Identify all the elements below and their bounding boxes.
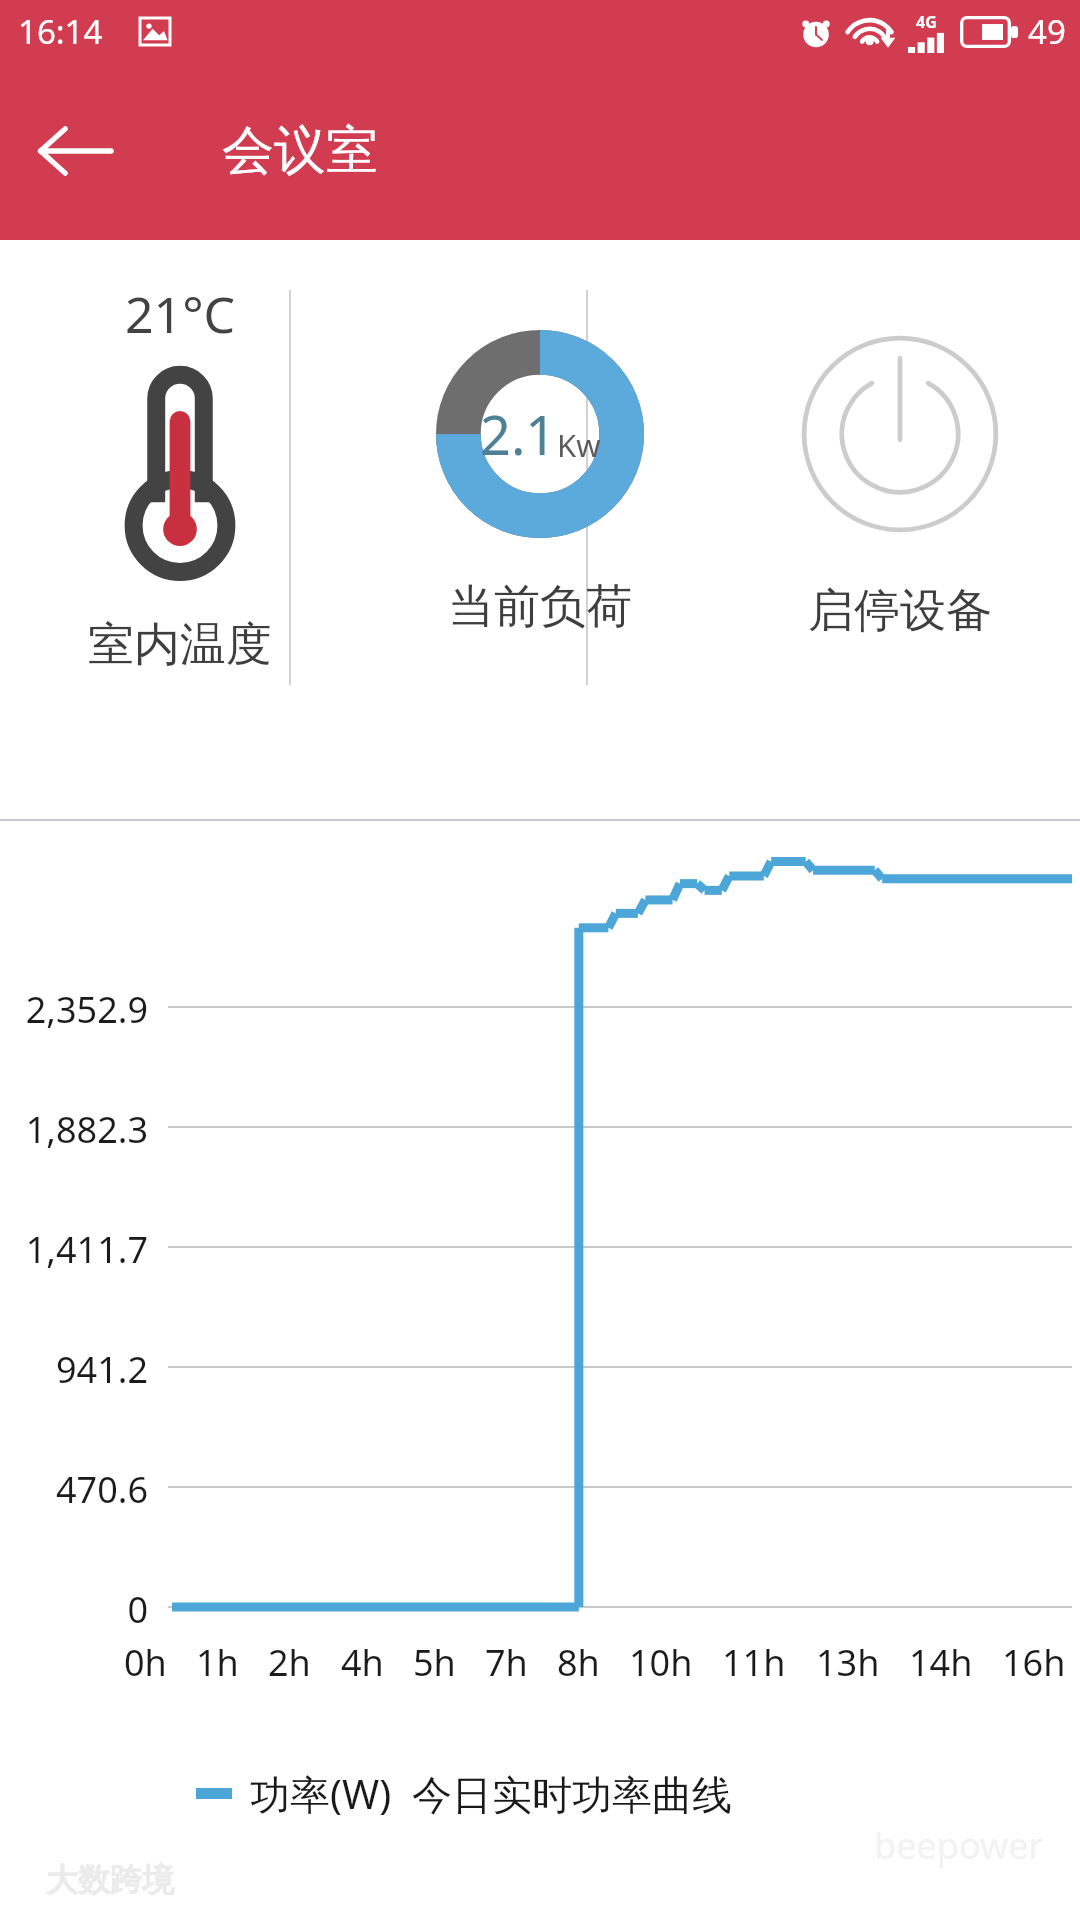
staticText: 1h	[196, 1638, 239, 1687]
staticText: 8h	[557, 1638, 600, 1687]
staticText: 2,352.9	[0, 985, 148, 1034]
staticText: 13h	[816, 1638, 880, 1687]
staticText: 470.6	[0, 1465, 148, 1514]
staticText: 7h	[485, 1638, 528, 1687]
staticText: 5h	[413, 1638, 456, 1687]
staticText: 2h	[268, 1638, 311, 1687]
button[interactable]: 2.1	[360, 240, 720, 819]
button[interactable]: 启停设备	[720, 240, 1080, 819]
staticText: 4h	[341, 1638, 384, 1687]
button[interactable]: 功率(W) 今日实时功率曲线	[196, 1766, 732, 1821]
staticText: 2.1	[480, 397, 557, 471]
button[interactable]: Back	[34, 110, 116, 192]
staticText: 0	[0, 1585, 148, 1634]
staticText: 启停设备	[808, 582, 992, 640]
staticText: 当前负荷	[448, 578, 632, 636]
staticText: 941.2	[0, 1345, 148, 1394]
staticText: 室内温度	[88, 616, 272, 674]
staticText: 1,411.7	[0, 1225, 148, 1274]
staticText: 14h	[909, 1638, 973, 1687]
staticText: 11h	[722, 1638, 786, 1687]
staticText: Kw	[557, 424, 601, 466]
staticText: 49	[1028, 9, 1066, 54]
staticText: 4G	[916, 11, 937, 33]
staticText: 会议室	[222, 118, 378, 184]
staticText: beepower	[874, 1821, 1044, 1870]
staticText: 10h	[629, 1638, 693, 1687]
staticText: 16:14	[18, 9, 103, 54]
staticText: 1,882.3	[0, 1105, 148, 1154]
staticText: 0h	[124, 1638, 167, 1687]
staticText: 大数跨境	[46, 1860, 174, 1900]
staticText: 功率(W) 今日实时功率曲线	[250, 1766, 732, 1821]
staticText: 16h	[1002, 1638, 1066, 1687]
button[interactable]: 21°C	[0, 240, 360, 819]
staticText: 21°C	[125, 280, 236, 348]
